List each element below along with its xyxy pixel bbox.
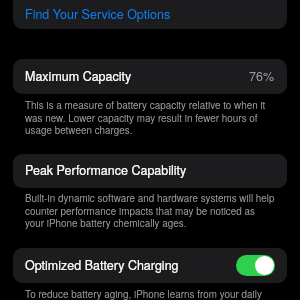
button[interactable]: Find Your Service Options (13, 0, 287, 29)
staticText: Find Your Service Options (25, 5, 171, 23)
staticText: This is a measure of battery capacity re… (25, 98, 275, 136)
staticText: To reduce battery aging, iPhone learns f… (25, 287, 275, 300)
staticText: Built-in dynamic software and hardware s… (25, 191, 275, 229)
staticText: Peak Performance Capability (25, 161, 187, 179)
button[interactable]: Optimized Battery Charging (236, 255, 275, 276)
button[interactable]: Peak Performance Capability (13, 154, 287, 188)
staticText: Optimized Battery Charging (25, 256, 179, 274)
button[interactable]: Maximum Capacity (13, 59, 287, 94)
staticText: 76% (249, 67, 275, 85)
staticText: Maximum Capacity (25, 67, 132, 85)
